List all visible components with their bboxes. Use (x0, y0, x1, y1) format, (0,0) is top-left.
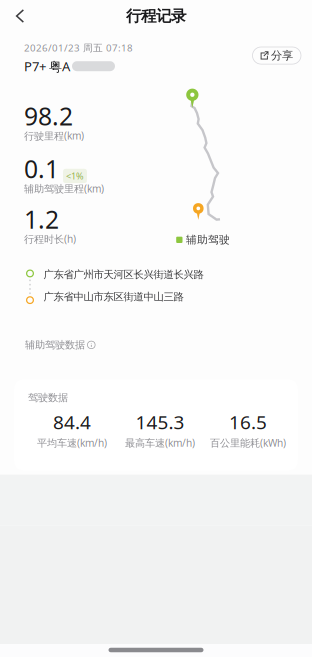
staticText: 84.4 (53, 409, 91, 435)
staticText: 辅助驾驶数据 (25, 338, 85, 351)
staticText: 最高车速(km/h) (125, 436, 195, 450)
staticText: 行程记录 (126, 6, 186, 26)
staticText: 百公里能耗(kWh) (210, 436, 286, 450)
staticText: P7+ 粤A (24, 57, 70, 75)
staticText: 1.2 (24, 202, 59, 236)
button[interactable]: Back (0, 2, 40, 30)
staticText: 2026/01/23 周五 07:18 (24, 41, 133, 54)
staticText: 平均车速(km/h) (37, 436, 107, 450)
staticText: 驾驶数据 (28, 391, 68, 404)
staticText: 行程时长(h) (24, 232, 76, 246)
staticText: 辅助驾驶 (186, 233, 230, 246)
staticText: 16.5 (229, 409, 267, 435)
staticText: 广东省中山市东区街道中山三路 (43, 290, 183, 303)
button[interactable]: 分享 (252, 47, 301, 64)
staticText: 辅助驾驶里程(km) (24, 182, 104, 195)
staticText: <1% (66, 170, 84, 182)
staticText: 0.1 (24, 152, 59, 186)
staticText: 分享 (271, 48, 293, 63)
staticText: 广东省广州市天河区长兴街道长兴路 (43, 268, 203, 281)
staticText: 98.2 (24, 99, 73, 133)
staticText: 145.3 (135, 409, 184, 435)
staticText: 行驶里程(km) (24, 129, 84, 142)
